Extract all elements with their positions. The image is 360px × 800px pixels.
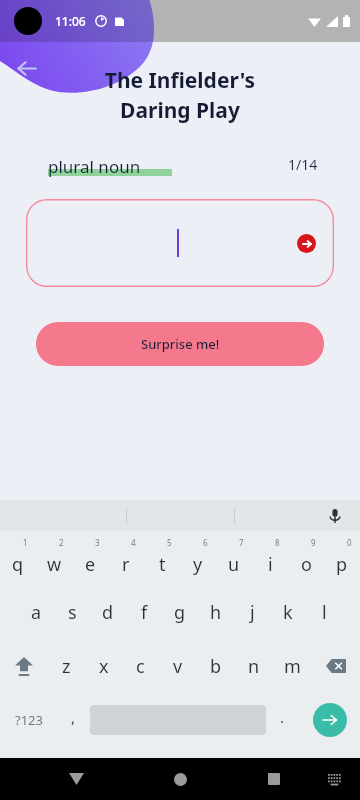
staticText: w <box>47 552 62 577</box>
staticText: 5 <box>167 537 172 548</box>
button[interactable]: j <box>234 590 270 634</box>
button[interactable]: b <box>197 644 235 688</box>
staticText: o <box>301 552 312 577</box>
button[interactable]: Voice input <box>322 503 348 529</box>
button[interactable]: 1 <box>0 536 36 582</box>
staticText: 4 <box>131 537 136 548</box>
staticText: j <box>250 600 255 625</box>
staticText: f <box>141 600 148 625</box>
staticText: d <box>102 600 114 625</box>
staticText: h <box>210 600 222 625</box>
staticText: s <box>68 600 77 625</box>
staticText: 11:06 <box>55 13 86 29</box>
button[interactable]: v <box>159 644 197 688</box>
staticText: l <box>322 600 327 625</box>
staticText: c <box>136 654 145 679</box>
staticText: z <box>62 654 71 679</box>
button[interactable]: 8 <box>252 536 288 582</box>
staticText: 6 <box>203 537 208 548</box>
staticText: 2 <box>59 537 64 548</box>
staticText: The Infielder's Daring Play <box>0 66 360 124</box>
button[interactable]: a <box>18 590 54 634</box>
button[interactable]: Shift <box>0 644 48 688</box>
staticText: t <box>159 552 166 577</box>
staticText: 8 <box>275 537 280 548</box>
button[interactable]: f <box>126 590 162 634</box>
button[interactable]: Back <box>56 758 96 800</box>
staticText: 1 <box>23 537 28 548</box>
staticText: p <box>336 552 348 577</box>
button[interactable]: Back <box>8 50 44 86</box>
staticText: . <box>280 707 285 727</box>
staticText: i <box>268 552 273 577</box>
staticText: plural noun <box>48 155 141 178</box>
button[interactable]: 3 <box>72 536 108 582</box>
staticText: v <box>173 654 183 679</box>
button[interactable]: ?123 <box>0 696 57 744</box>
button[interactable]: 4 <box>108 536 144 582</box>
staticText: k <box>283 600 293 625</box>
staticText: , <box>71 707 76 727</box>
button[interactable]: Switch keyboard <box>318 762 352 796</box>
staticText: b <box>210 654 222 679</box>
staticText: ?123 <box>15 711 43 729</box>
button[interactable]: , <box>57 696 90 744</box>
button[interactable]: Recents <box>254 759 294 799</box>
button[interactable]: 2 <box>36 536 72 582</box>
button[interactable]: 9 <box>288 536 324 582</box>
button[interactable]: n <box>235 644 273 688</box>
button[interactable]: k <box>270 590 306 634</box>
button[interactable]: l <box>306 590 342 634</box>
staticText: u <box>228 552 240 577</box>
button[interactable]: 5 <box>144 536 180 582</box>
button[interactable]: c <box>122 644 159 688</box>
button[interactable]: Submit <box>26 199 334 287</box>
staticText: a <box>31 600 42 625</box>
button[interactable]: Surprise me! <box>36 322 324 366</box>
button[interactable]: . <box>266 696 299 744</box>
staticText: Surprise me! <box>141 335 220 353</box>
button[interactable]: Enter <box>313 703 347 737</box>
button[interactable]: x <box>85 644 122 688</box>
button[interactable]: Home <box>160 759 200 799</box>
button[interactable]: Backspace <box>311 644 360 688</box>
button[interactable]: s <box>54 590 90 634</box>
button[interactable]: 6 <box>180 536 216 582</box>
staticText: 3 <box>95 537 100 548</box>
button[interactable]: d <box>90 590 126 634</box>
button[interactable]: m <box>273 644 311 688</box>
button[interactable]: z <box>48 644 85 688</box>
staticText: y <box>193 552 203 577</box>
staticText: r <box>122 552 130 577</box>
button[interactable]: Submit <box>297 234 316 253</box>
button[interactable]: 0 <box>324 536 360 582</box>
button[interactable]: 7 <box>216 536 252 582</box>
staticText: m <box>284 654 301 679</box>
button[interactable]: h <box>198 590 234 634</box>
staticText: 9 <box>311 537 316 548</box>
button[interactable]: g <box>162 590 198 634</box>
staticText: 1/14 <box>288 155 318 174</box>
staticText: 0 <box>347 537 352 548</box>
staticText: e <box>85 552 96 577</box>
staticText: n <box>248 654 260 679</box>
staticText: x <box>99 654 109 679</box>
staticText: g <box>174 600 186 625</box>
staticText: q <box>12 552 24 577</box>
staticText: 7 <box>239 537 244 548</box>
